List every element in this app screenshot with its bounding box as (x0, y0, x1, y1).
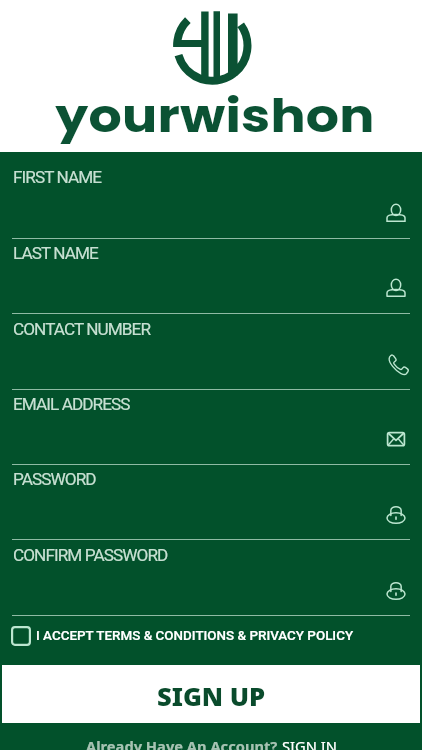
other: FIRST NAME (384, 201, 408, 225)
button[interactable]: CONTACT NUMBER (0, 315, 422, 390)
other: PASSWORD (384, 502, 408, 526)
staticText: Already Have An Account? (86, 736, 282, 750)
staticText: PASSWORD (13, 469, 96, 489)
button[interactable]: SIGN IN (282, 736, 337, 750)
staticText: CONTACT NUMBER (13, 319, 151, 339)
button[interactable]: CONFIRM PASSWORD (0, 541, 422, 616)
other: CONTACT NUMBER (384, 352, 408, 376)
button[interactable]: SIGN UP (2, 665, 420, 723)
staticText: CONFIRM PASSWORD (13, 545, 168, 565)
button[interactable]: LAST NAME (0, 239, 422, 314)
staticText: SIGN UP (157, 679, 266, 714)
staticText: EMAIL ADDRESS (13, 394, 130, 414)
other: CONFIRM PASSWORD (384, 578, 408, 602)
button[interactable]: PASSWORD (0, 465, 422, 540)
other: EMAIL ADDRESS (384, 427, 408, 451)
other: LAST NAME (384, 276, 408, 300)
button[interactable]: EMAIL ADDRESS (0, 390, 422, 465)
staticText: yourwishon (0, 85, 422, 148)
button[interactable]: I ACCEPT TERMS & CONDITIONS & PRIVACY PO… (0, 610, 422, 661)
staticText: I ACCEPT TERMS & CONDITIONS & PRIVACY PO… (36, 628, 354, 644)
staticText: FIRST NAME (13, 167, 102, 187)
button[interactable]: FIRST NAME (0, 152, 422, 239)
staticText: LAST NAME (13, 243, 98, 263)
